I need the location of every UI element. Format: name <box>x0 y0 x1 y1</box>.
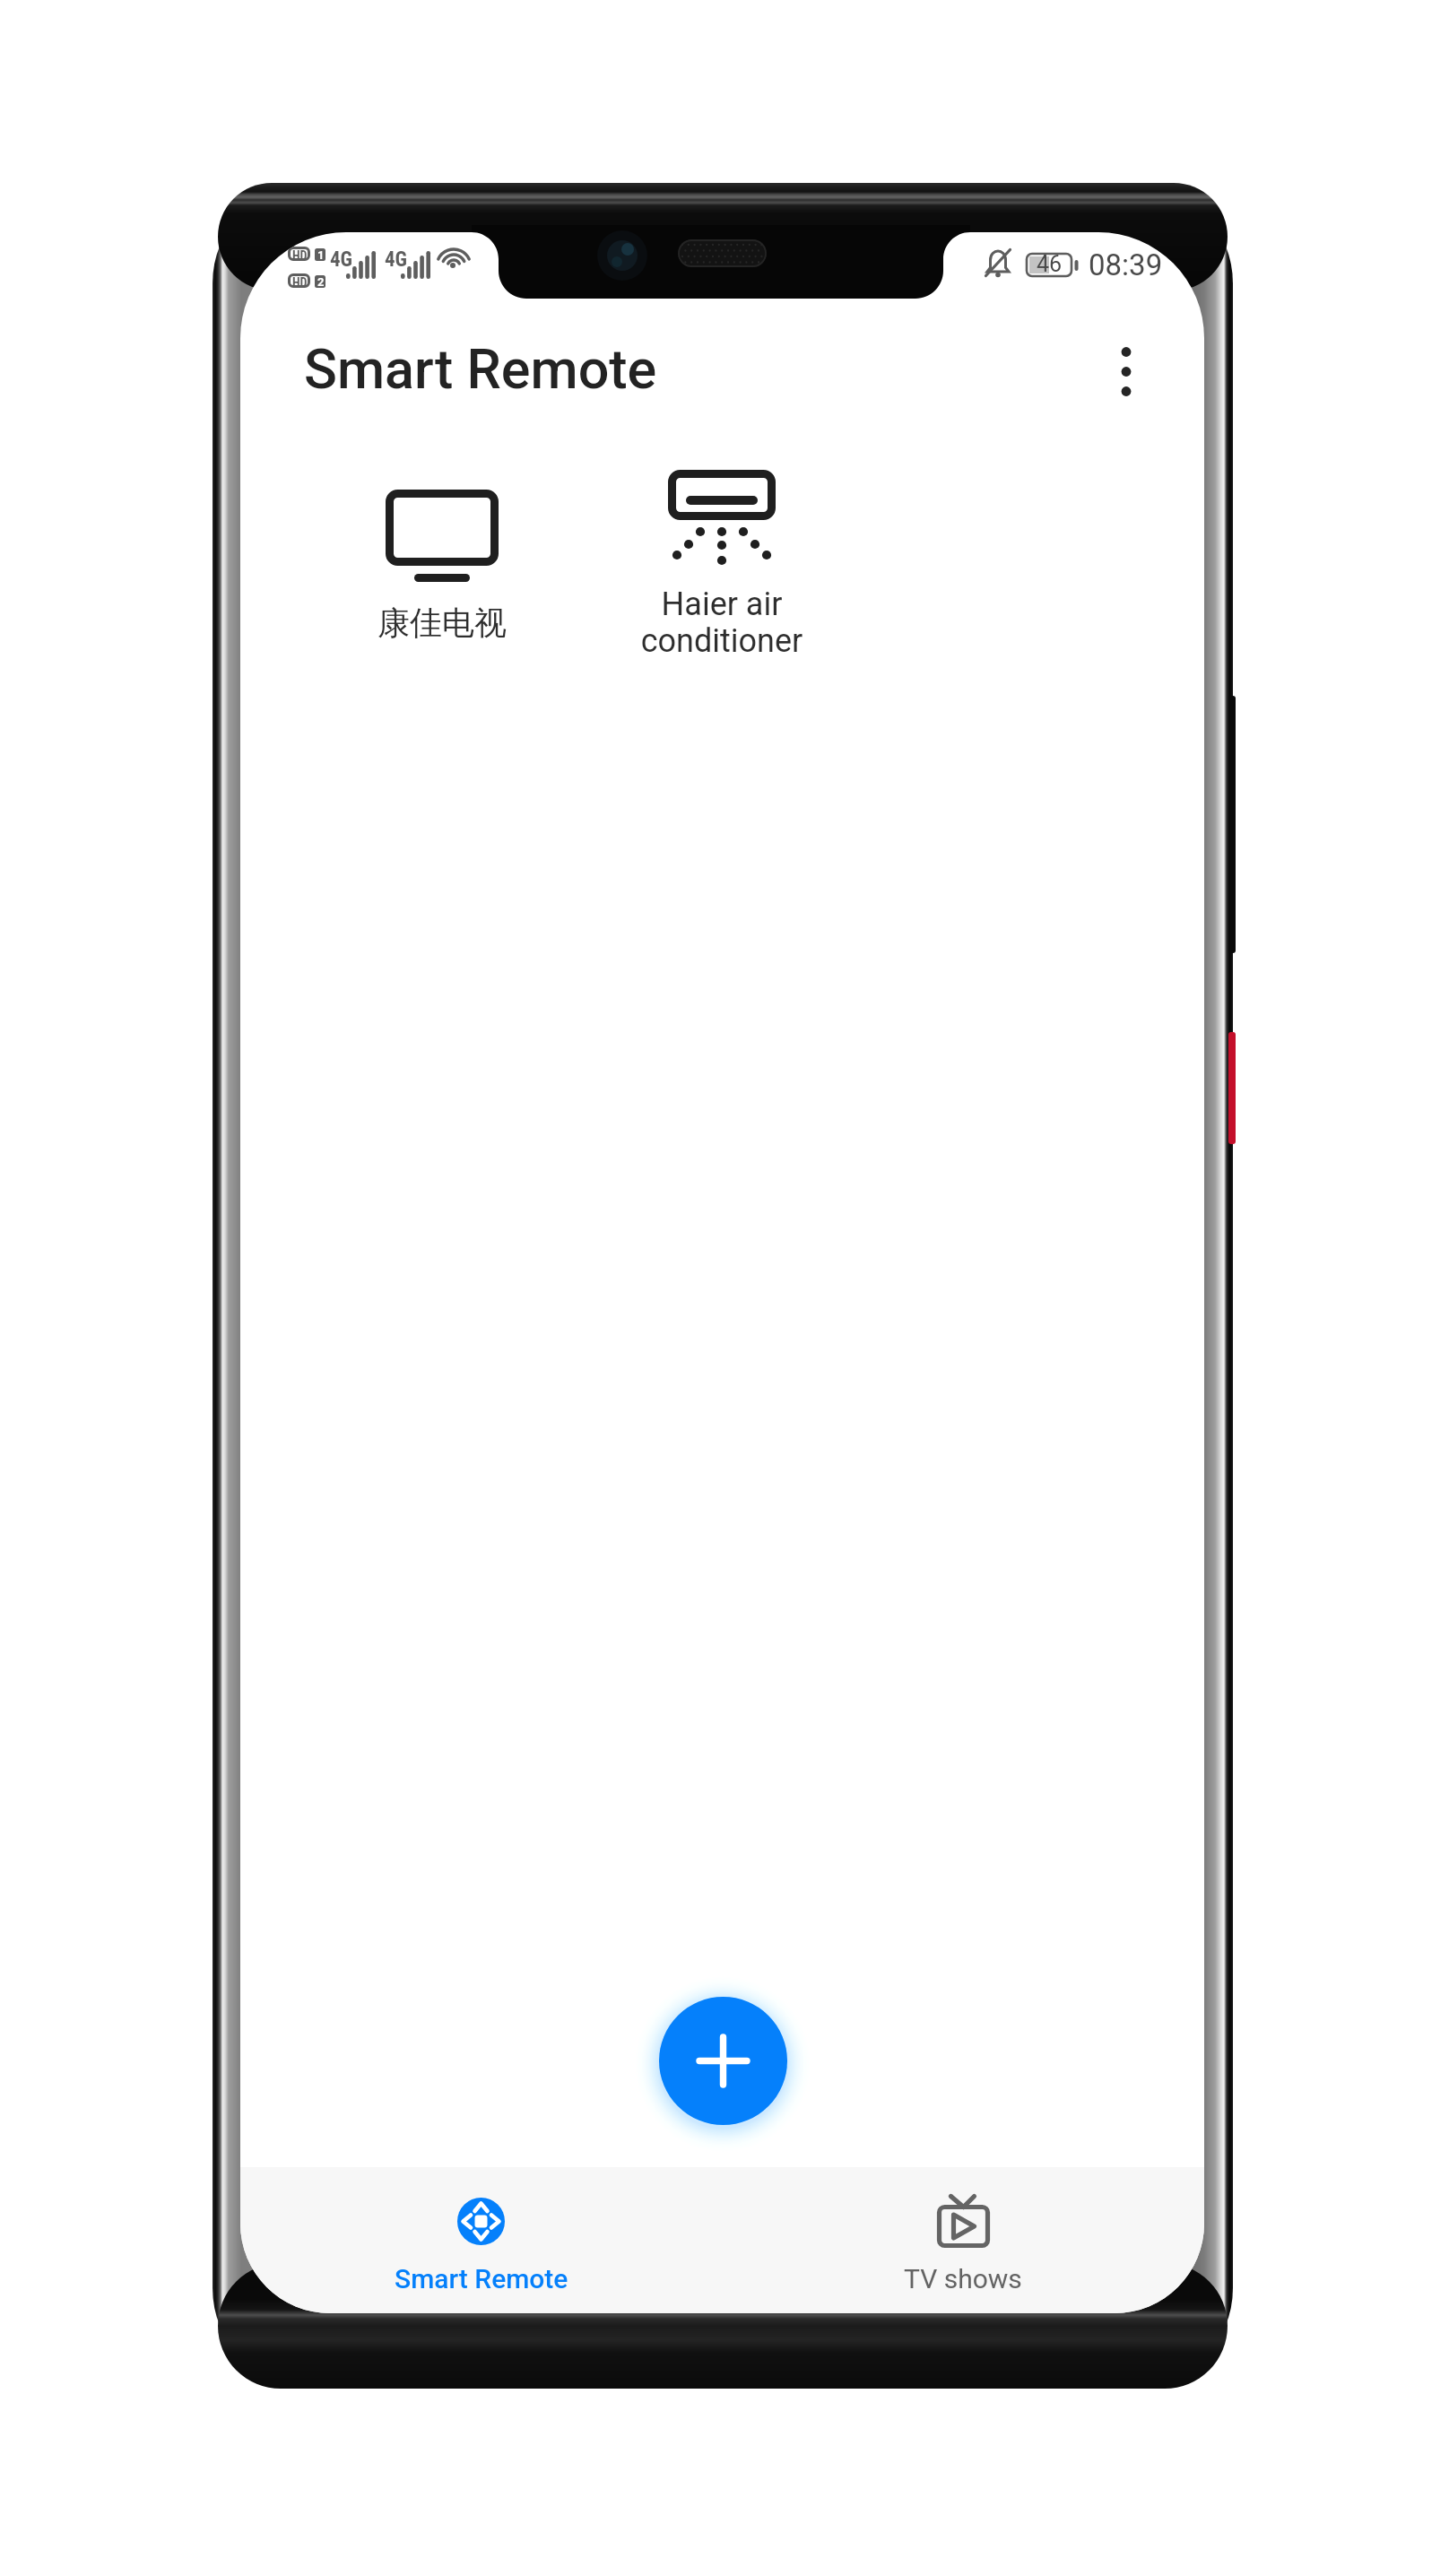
staticText: Smart Remote <box>395 2263 568 2294</box>
button[interactable]: Haier air conditioner <box>623 470 820 660</box>
button[interactable]: Smart Remote <box>240 2167 722 2313</box>
staticText: 2 <box>317 275 325 289</box>
staticText: TV shows <box>904 2263 1022 2294</box>
staticText: 康佳电视 <box>377 603 507 643</box>
staticText: Smart Remote <box>304 337 657 401</box>
staticText: 4G <box>330 247 353 272</box>
staticText: HD <box>292 248 308 263</box>
staticText: HD <box>292 275 308 290</box>
staticText: 46 <box>1037 251 1063 277</box>
button[interactable]: 康佳电视 <box>348 490 536 643</box>
button[interactable]: More options <box>1077 319 1176 418</box>
button[interactable]: TV shows <box>722 2167 1204 2313</box>
staticText: 08:39 <box>1089 247 1163 282</box>
staticText: 1 <box>317 248 325 262</box>
button[interactable]: Add device <box>659 1997 787 2125</box>
staticText: Haier air conditioner <box>632 585 811 660</box>
staticText: 4G <box>385 247 408 272</box>
